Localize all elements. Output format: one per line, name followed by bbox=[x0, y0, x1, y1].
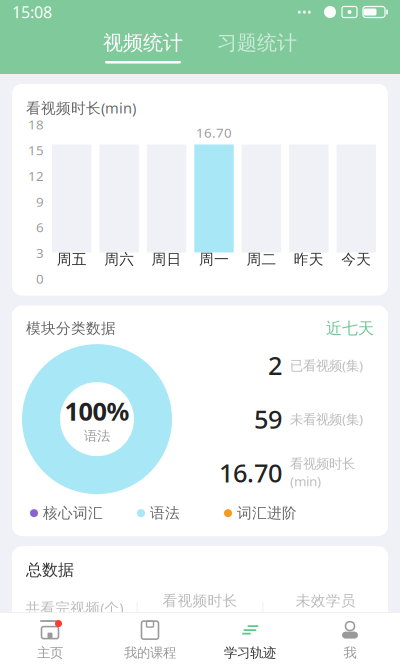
button[interactable]: 近七天 bbox=[326, 318, 374, 338]
button[interactable]: 我 bbox=[300, 613, 400, 667]
staticText: 2 bbox=[268, 348, 282, 382]
staticText: 0 bbox=[36, 270, 44, 287]
staticText: 近七天 bbox=[326, 318, 374, 338]
staticText: 12 bbox=[28, 167, 44, 185]
staticText: 看视频时长(min) bbox=[290, 456, 355, 490]
staticText: 模块分类数据 bbox=[26, 319, 116, 337]
staticText: 共看完视频(个) bbox=[25, 598, 123, 618]
staticText: 看视频时长 bbox=[162, 592, 237, 610]
staticText: 学习轨迹 bbox=[224, 645, 276, 661]
staticText: 周一 bbox=[199, 250, 229, 268]
staticText: 词汇进阶 bbox=[237, 504, 297, 522]
staticText bbox=[357, 0, 363, 27]
staticText: 66.19 bbox=[285, 624, 352, 659]
staticText: 未看视频(集) bbox=[290, 410, 363, 428]
staticText: 100% bbox=[64, 394, 129, 428]
staticText: 主页 bbox=[37, 645, 63, 661]
staticText: 3 bbox=[36, 244, 44, 262]
staticText: 语法 bbox=[150, 504, 180, 522]
button[interactable]: 习题统计 bbox=[217, 30, 297, 64]
staticText: 我的课程 bbox=[124, 645, 176, 661]
staticText: 16.70 bbox=[196, 124, 232, 141]
staticText: 看视频时长(min) bbox=[26, 98, 136, 117]
staticText: 16.70 bbox=[219, 456, 282, 490]
staticText: ••• bbox=[297, 4, 312, 20]
staticText: 6 bbox=[36, 218, 44, 236]
staticText: 我 bbox=[343, 645, 356, 661]
staticText: 周六 bbox=[104, 250, 134, 268]
staticText: 59 bbox=[254, 402, 282, 436]
staticText: 昨天 bbox=[294, 250, 324, 268]
staticText bbox=[336, 0, 342, 27]
staticText: 15 bbox=[28, 141, 44, 159]
staticText: 9 bbox=[36, 193, 44, 210]
button[interactable]: 主页 bbox=[0, 613, 100, 667]
staticText: 语法 bbox=[84, 428, 110, 444]
staticText: 周五 bbox=[57, 250, 87, 268]
staticText: 17 bbox=[166, 624, 196, 659]
staticText: 未效学员 bbox=[296, 592, 356, 610]
staticText: 习题统计 bbox=[217, 30, 297, 55]
staticText: 已看视频(集) bbox=[290, 356, 363, 374]
button[interactable]: 我的课程 bbox=[100, 613, 200, 667]
button[interactable]: 学习轨迹 bbox=[200, 613, 300, 667]
staticText: 核心词汇 bbox=[43, 504, 103, 522]
staticText: 周日 bbox=[152, 250, 182, 268]
staticText: 视频统计 bbox=[103, 30, 183, 55]
staticText: 今天 bbox=[341, 250, 371, 268]
staticText: 周二 bbox=[246, 250, 276, 268]
button[interactable]: 视频统计 bbox=[103, 30, 183, 64]
staticText: mins bbox=[197, 638, 234, 659]
staticText: 18 bbox=[28, 115, 44, 133]
staticText: 总数据 bbox=[26, 560, 74, 580]
staticText: % bbox=[353, 638, 366, 659]
staticText: 15:08 bbox=[12, 1, 52, 23]
